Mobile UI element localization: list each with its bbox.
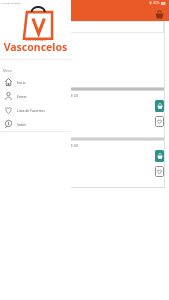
staticText: $ 0.0 <box>71 144 79 148</box>
button[interactable]: Add to cart <box>155 100 164 112</box>
staticText: Menu <box>3 69 12 73</box>
staticText: Inicio <box>17 80 26 85</box>
button[interactable]: Add to favorites <box>155 116 164 127</box>
staticText: Lista de Favoritos <box>17 108 45 113</box>
button[interactable] <box>1 21 164 33</box>
staticText: Sobre <box>17 122 27 127</box>
staticText: 1:21 PM Fri Jan 31 <box>1 1 22 4</box>
button[interactable]: Add to favorites <box>155 166 164 177</box>
button[interactable]: Sobre <box>0 117 71 131</box>
staticText: L I B R E R I A S <box>0 38 71 42</box>
button[interactable]: Inicio <box>0 75 71 89</box>
button[interactable]: Shopping cart <box>155 10 164 19</box>
button[interactable]: Entrar <box>0 89 71 103</box>
staticText: Vasconcelos <box>0 40 71 54</box>
staticText: Entrar <box>17 94 27 99</box>
staticText: $ 0.0 <box>71 94 79 98</box>
staticText: 40% <box>153 1 160 5</box>
button[interactable]: Add to cart <box>155 150 164 162</box>
button[interactable]: Lista de Favoritos <box>0 103 71 117</box>
